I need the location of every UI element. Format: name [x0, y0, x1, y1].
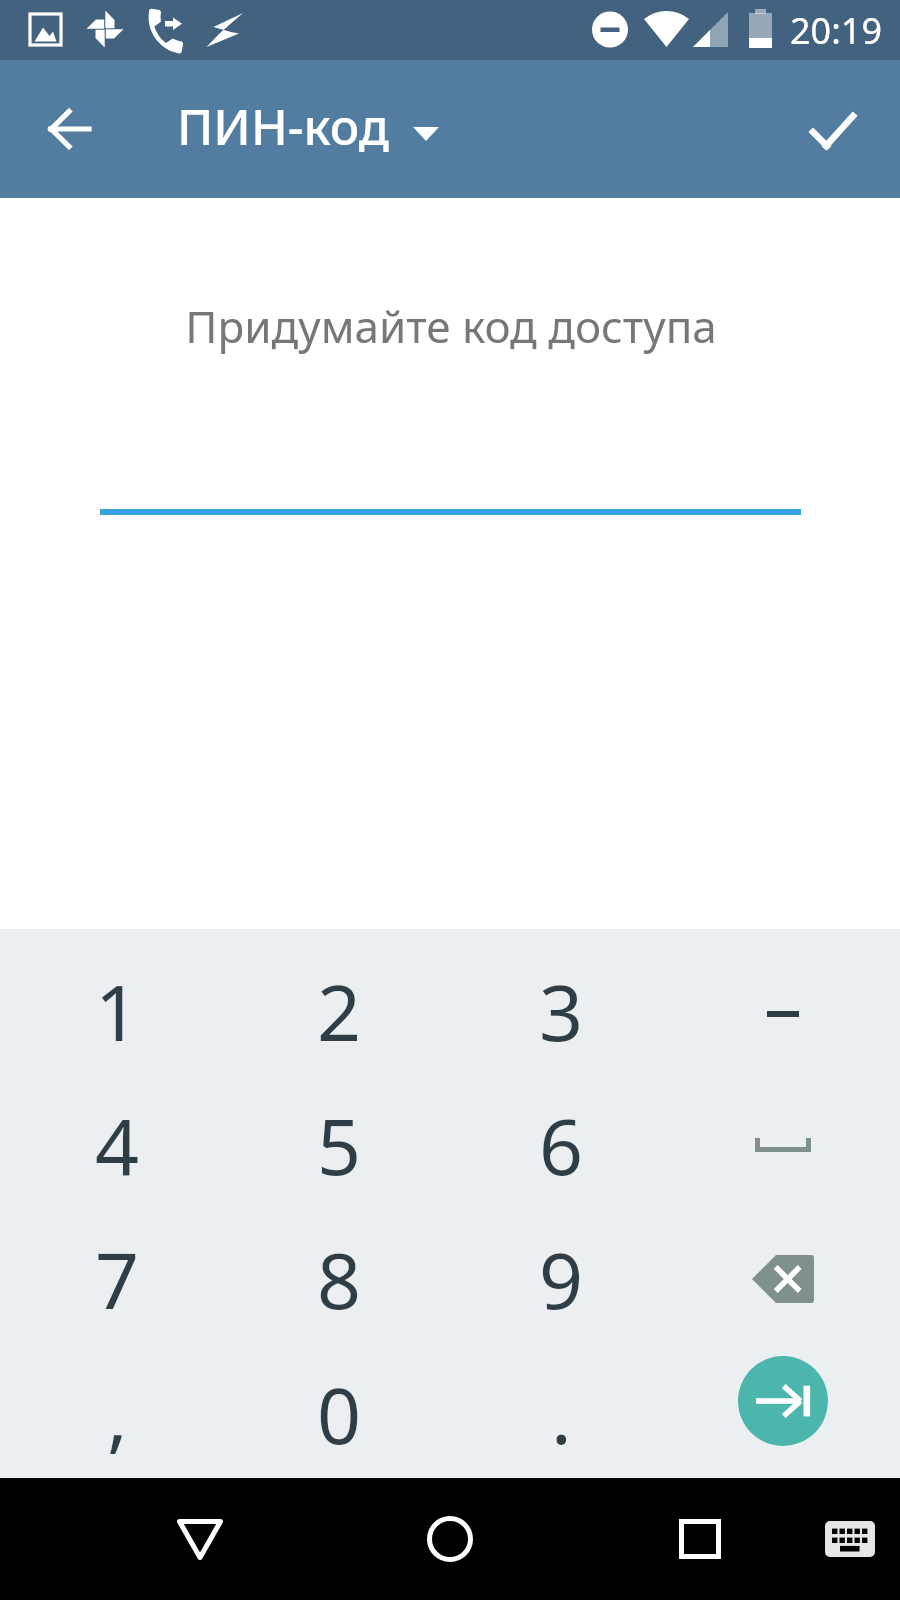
- button[interactable]: 1: [6, 944, 228, 1078]
- button[interactable]: ,: [6, 1347, 228, 1481]
- button[interactable]: Backspace: [672, 1212, 894, 1346]
- button[interactable]: Recent apps: [655, 1494, 745, 1584]
- staticText: 0: [317, 1362, 362, 1467]
- button[interactable]: 9: [450, 1212, 672, 1346]
- button[interactable]: Minus: [672, 944, 894, 1078]
- button[interactable]: 2: [228, 944, 450, 1078]
- button[interactable]: 8: [228, 1212, 450, 1346]
- button[interactable]: 6: [450, 1078, 672, 1212]
- staticText: Придумайте код доступа: [1, 296, 900, 356]
- button[interactable]: Back: [26, 86, 112, 172]
- staticText: .: [551, 1362, 572, 1467]
- staticText: 6: [539, 1093, 584, 1198]
- button[interactable]: 5: [228, 1078, 450, 1212]
- staticText: ,: [107, 1362, 128, 1467]
- button[interactable]: 0: [228, 1347, 450, 1481]
- button[interactable]: Space: [672, 1078, 894, 1212]
- staticText: 9: [539, 1227, 584, 1332]
- staticText: ПИН-код: [177, 93, 389, 160]
- button[interactable]: 4: [6, 1078, 228, 1212]
- button[interactable]: Confirm: [790, 88, 876, 174]
- button[interactable]: 7: [6, 1212, 228, 1346]
- staticText: 4: [95, 1093, 140, 1198]
- button[interactable]: Home: [405, 1494, 495, 1584]
- staticText: 7: [95, 1227, 140, 1332]
- button[interactable]: ПИН-код: [177, 93, 439, 160]
- button[interactable]: 3: [450, 944, 672, 1078]
- button[interactable]: Enter: [672, 1347, 894, 1481]
- staticText: 1: [95, 959, 140, 1064]
- button[interactable]: Keyboard: [810, 1499, 890, 1579]
- staticText: 2: [317, 959, 362, 1064]
- button[interactable]: Back: [155, 1494, 245, 1584]
- button[interactable]: .: [450, 1347, 672, 1481]
- staticText: 3: [539, 959, 584, 1064]
- staticText: 20:19: [790, 6, 883, 55]
- staticText: 8: [317, 1227, 362, 1332]
- staticText: 5: [317, 1093, 362, 1198]
